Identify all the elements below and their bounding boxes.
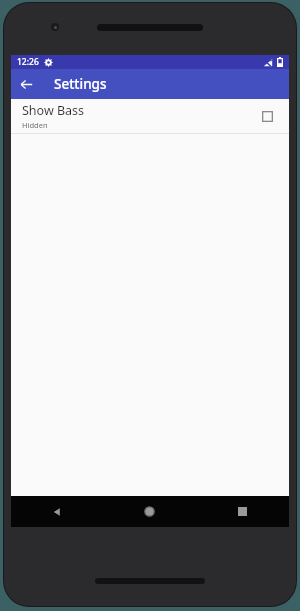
staticText: Settings xyxy=(54,75,107,93)
staticText: Show Bass xyxy=(22,102,85,119)
button[interactable]: Show Bass xyxy=(11,99,289,133)
staticText: 12:26 xyxy=(17,56,39,68)
staticText: Hidden xyxy=(22,120,48,130)
button[interactable]: Back xyxy=(11,496,103,527)
button[interactable]: Recent apps xyxy=(196,496,289,527)
button[interactable]: Navigate up xyxy=(11,69,41,99)
button[interactable]: Home xyxy=(103,496,196,527)
